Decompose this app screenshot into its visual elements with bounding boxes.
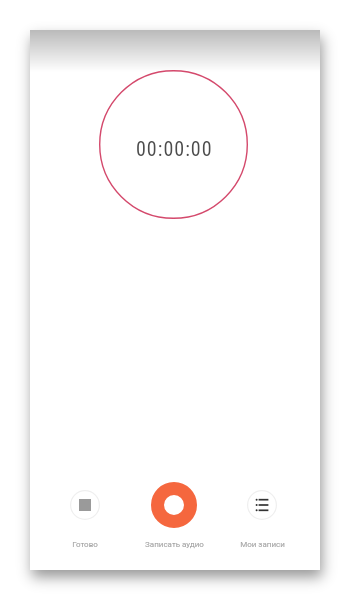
button[interactable]: Записать аудио: [130, 470, 218, 570]
button[interactable]: Готово — остановить запись: [45, 470, 125, 570]
staticText: Мои записи: [240, 540, 285, 549]
staticText: Записать аудио: [145, 540, 204, 549]
button[interactable]: Таймер записи: [99, 70, 248, 219]
button[interactable]: Мои записи: [222, 470, 302, 570]
staticText: 00:00:00: [136, 137, 213, 160]
staticText: Готово: [72, 540, 98, 549]
